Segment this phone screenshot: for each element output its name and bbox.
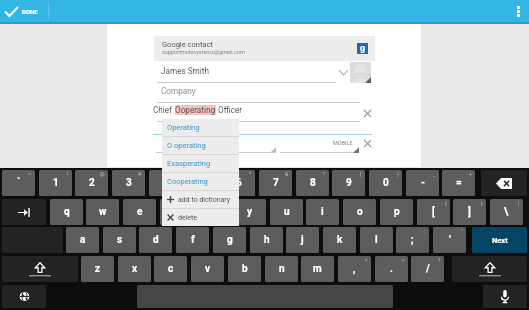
staticText: DONE bbox=[22, 8, 38, 15]
button[interactable]: delete bbox=[162, 209, 239, 226]
button[interactable]: d bbox=[139, 227, 172, 253]
staticText: Ooperating bbox=[175, 105, 216, 115]
button[interactable]: Remove field bbox=[361, 107, 373, 119]
button[interactable]: 2 bbox=[75, 170, 108, 196]
staticText: i bbox=[321, 206, 324, 218]
button[interactable]: add to dictionary bbox=[162, 191, 239, 208]
staticText: [ bbox=[432, 206, 435, 218]
staticText: 3 bbox=[126, 177, 132, 189]
staticText: 0 bbox=[383, 177, 389, 189]
button[interactable]: a bbox=[66, 227, 99, 253]
button[interactable]: l bbox=[360, 227, 393, 253]
button[interactable]: Cooperating bbox=[162, 173, 239, 190]
staticText: ` bbox=[17, 177, 21, 189]
staticText: ) bbox=[397, 171, 399, 177]
button[interactable]: Google contact bbox=[154, 36, 375, 61]
staticText: add to dictionary bbox=[178, 196, 231, 204]
button[interactable]: Operating bbox=[162, 119, 239, 136]
button[interactable]: . bbox=[375, 256, 408, 282]
button[interactable]: t bbox=[196, 199, 229, 225]
button[interactable]: k bbox=[323, 227, 356, 253]
button[interactable]: 3 bbox=[112, 170, 145, 196]
button[interactable]: w bbox=[86, 199, 119, 225]
button[interactable]: = bbox=[442, 170, 475, 196]
button[interactable]: n bbox=[265, 256, 298, 282]
staticText: z bbox=[95, 263, 101, 275]
button[interactable]: b bbox=[228, 256, 261, 282]
button[interactable]: m bbox=[301, 256, 334, 282]
button[interactable]: More options bbox=[507, 0, 529, 22]
staticText: Cooperating bbox=[167, 177, 208, 186]
button[interactable]: DONE bbox=[0, 0, 48, 22]
staticText: p bbox=[394, 206, 400, 218]
button[interactable]: z bbox=[81, 256, 114, 282]
staticText: x bbox=[132, 263, 138, 275]
button[interactable]: j bbox=[286, 227, 319, 253]
button[interactable]: ` bbox=[2, 170, 35, 196]
button[interactable]: 6 bbox=[222, 170, 255, 196]
button[interactable]: Shift bbox=[2, 256, 78, 282]
button[interactable]: O operating bbox=[162, 137, 239, 154]
button[interactable]: x bbox=[118, 256, 151, 282]
button[interactable]: Remove field bbox=[361, 137, 373, 149]
button[interactable]: r bbox=[160, 199, 193, 225]
button[interactable]: o bbox=[343, 199, 376, 225]
button[interactable]: / bbox=[411, 256, 444, 282]
staticText: g bbox=[227, 234, 233, 246]
button[interactable]: Switch keyboard bbox=[2, 285, 46, 308]
button[interactable]: 0 bbox=[369, 170, 402, 196]
staticText: 2 bbox=[89, 177, 95, 189]
staticText: 7 bbox=[273, 177, 279, 189]
button[interactable]: c bbox=[154, 256, 187, 282]
button[interactable]: g bbox=[213, 227, 246, 253]
button[interactable]: Contact photo bbox=[350, 62, 371, 83]
staticText: + bbox=[469, 171, 472, 177]
staticText: > bbox=[402, 257, 405, 263]
button[interactable]: [ bbox=[417, 199, 450, 225]
button[interactable]: 5 bbox=[186, 170, 219, 196]
button[interactable]: f bbox=[176, 227, 209, 253]
staticText: delete bbox=[178, 214, 198, 222]
button[interactable]: y bbox=[233, 199, 266, 225]
button[interactable]: u bbox=[270, 199, 303, 225]
button[interactable]: 9 bbox=[332, 170, 365, 196]
button[interactable]: Exasperating bbox=[162, 155, 239, 172]
staticText: " bbox=[461, 228, 463, 234]
button[interactable]: e bbox=[123, 199, 156, 225]
button[interactable]: 4 bbox=[149, 170, 182, 196]
staticText: / bbox=[426, 263, 430, 275]
button[interactable]: q bbox=[50, 199, 83, 225]
staticText: James Smith bbox=[161, 66, 209, 76]
button[interactable]: p bbox=[380, 199, 413, 225]
button[interactable]: \ bbox=[490, 199, 523, 225]
button[interactable]: ; bbox=[396, 227, 429, 253]
button[interactable]: 8 bbox=[296, 170, 329, 196]
button[interactable]: h bbox=[250, 227, 283, 253]
staticText: f bbox=[191, 234, 195, 246]
button[interactable]: v bbox=[191, 256, 224, 282]
staticText: d bbox=[153, 234, 159, 246]
staticText: % bbox=[212, 171, 216, 177]
staticText: 8 bbox=[310, 177, 316, 189]
button[interactable]: Tab bbox=[2, 199, 46, 225]
button[interactable]: Backspace bbox=[481, 170, 527, 196]
staticText: Company bbox=[161, 86, 196, 96]
button[interactable]: 7 bbox=[259, 170, 292, 196]
staticText: . bbox=[390, 263, 393, 275]
button[interactable]: , bbox=[338, 256, 371, 282]
button[interactable]: Voice input bbox=[483, 285, 527, 308]
button[interactable]: 1 bbox=[39, 170, 72, 196]
staticText: a bbox=[80, 234, 86, 246]
button[interactable]: Next bbox=[472, 227, 527, 253]
button[interactable]: - bbox=[406, 170, 439, 196]
staticText: 1 bbox=[53, 177, 59, 189]
button[interactable]: s bbox=[103, 227, 136, 253]
button[interactable]: i bbox=[306, 199, 339, 225]
button[interactable]: Shift bbox=[452, 256, 527, 282]
button[interactable]: ' bbox=[433, 227, 466, 253]
staticText: k bbox=[337, 234, 343, 246]
button[interactable]: ] bbox=[453, 199, 486, 225]
staticText: c bbox=[168, 263, 174, 275]
